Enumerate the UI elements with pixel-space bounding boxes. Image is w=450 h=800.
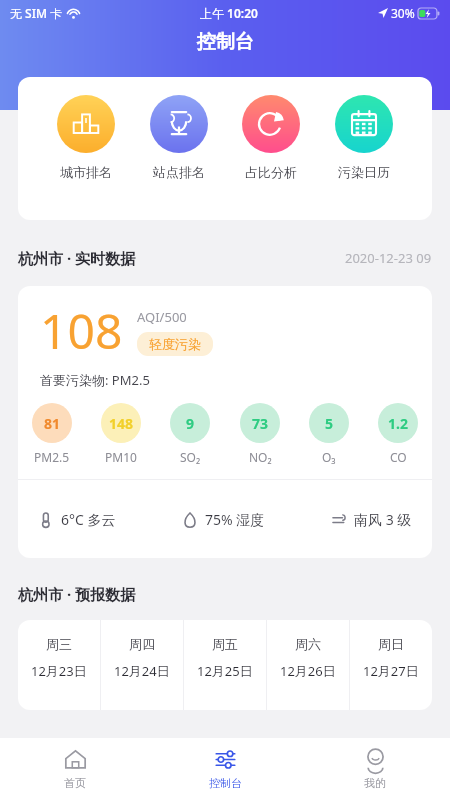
staticText: 污染日历 — [338, 164, 390, 180]
staticText: 12月24日 — [114, 662, 170, 680]
staticText: 无 SIM 卡 — [10, 5, 63, 21]
staticText: 12月27日 — [363, 662, 419, 680]
staticText: 占比分析 — [245, 164, 297, 180]
staticText: 首要污染物: PM2.5 — [40, 371, 150, 389]
staticText: 1.2 — [388, 414, 408, 433]
staticText: 周日 — [378, 636, 404, 652]
button[interactable]: 污染日历 — [327, 95, 401, 180]
staticText: 我的 — [364, 776, 386, 790]
staticText: 12月25日 — [197, 662, 253, 680]
staticText: 73 — [252, 414, 269, 433]
button[interactable]: 首页 — [0, 738, 150, 800]
staticText: 30% — [391, 5, 415, 21]
staticText: 12月23日 — [31, 662, 87, 680]
staticText: 周四 — [129, 636, 155, 652]
staticText: 南风 3 级 — [354, 510, 412, 529]
staticText: 周五 — [212, 636, 238, 652]
staticText: 12月26日 — [280, 662, 336, 680]
staticText: 城市排名 — [60, 164, 112, 180]
staticText: 148 — [109, 414, 134, 433]
button[interactable]: 周四 — [101, 620, 183, 710]
staticText: 108 — [40, 298, 123, 363]
staticText: 75% 湿度 — [205, 510, 265, 529]
button[interactable]: 我的 — [300, 738, 450, 800]
staticText: 控制台 — [197, 30, 254, 54]
staticText: CO — [390, 449, 407, 465]
button[interactable]: 站点排名 — [142, 95, 216, 180]
staticText: 81 — [44, 414, 61, 433]
staticText: 首页 — [64, 776, 86, 790]
staticText: 6°C 多云 — [61, 510, 116, 529]
button[interactable]: 周五 — [184, 620, 266, 710]
button[interactable]: 占比分析 — [234, 95, 308, 180]
staticText: 杭州市 · 实时数据 — [18, 248, 136, 268]
button[interactable]: 周六 — [267, 620, 349, 710]
staticText: 2020-12-23 09 — [345, 249, 432, 267]
button[interactable]: 控制台 — [150, 738, 300, 800]
staticText: 控制台 — [209, 776, 242, 790]
staticText: O₃ — [322, 449, 336, 465]
staticText: 9 — [186, 414, 195, 433]
staticText: 杭州市 · 预报数据 — [18, 584, 136, 604]
staticText: 站点排名 — [153, 164, 205, 180]
staticText: 5 — [325, 414, 334, 433]
staticText: SO₂ — [180, 449, 201, 465]
staticText: 周三 — [46, 636, 72, 652]
staticText: PM10 — [105, 449, 137, 465]
staticText: 上午 10:20 — [200, 5, 258, 21]
staticText: NO₂ — [249, 449, 272, 465]
staticText: 轻度污染 — [149, 336, 201, 352]
button[interactable]: 周日 — [350, 620, 432, 710]
staticText: AQI/500 — [137, 308, 187, 326]
staticText: 周六 — [295, 636, 321, 652]
button[interactable]: 周三 — [18, 620, 100, 710]
staticText: PM2.5 — [34, 449, 70, 465]
button[interactable]: 城市排名 — [49, 95, 123, 180]
